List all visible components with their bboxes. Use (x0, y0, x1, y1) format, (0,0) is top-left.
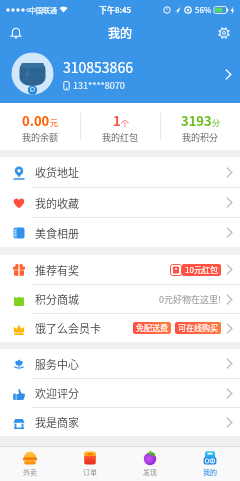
staticText: 免配送费 (136, 322, 168, 334)
staticText: 可在线购买 (178, 322, 218, 334)
staticText: 饿了么会员卡 (35, 320, 101, 336)
button[interactable]: 我的 (180, 447, 240, 481)
staticText: 310853866 (63, 57, 133, 77)
button[interactable]: 310853866 (0, 45, 240, 103)
staticText: 推荐有奖 (35, 262, 79, 278)
staticText: 中国联通 (29, 5, 57, 15)
staticText: 我的 (203, 467, 217, 477)
button[interactable]: 欢迎评分 (0, 379, 240, 407)
staticText: 发现 (143, 467, 157, 477)
staticText: 欢迎评分 (35, 385, 79, 401)
staticText: 外卖 (23, 467, 37, 477)
staticText: 服务中心 (35, 356, 79, 372)
button[interactable]: 1 (81, 103, 160, 150)
staticText: 分 (212, 117, 220, 129)
staticText: 我的积分 (182, 131, 219, 144)
button[interactable]: 我的收藏 (0, 188, 240, 217)
staticText: 下午8:45 (99, 4, 132, 16)
button[interactable]: 0.00 (0, 103, 80, 150)
button[interactable]: 订单 (60, 447, 120, 481)
staticText: 收货地址 (35, 164, 79, 180)
staticText: 3193 (181, 111, 212, 130)
staticText: 0元好物在这里! (159, 293, 221, 306)
staticText: 元 (50, 117, 58, 129)
button[interactable]: 美食相册 (0, 218, 240, 247)
button[interactable]: 外卖 (0, 447, 60, 481)
staticText: 我的收藏 (35, 195, 79, 211)
staticText: 0.00 (22, 111, 50, 130)
staticText: 订单 (83, 467, 97, 477)
button[interactable] (7, 24, 25, 42)
staticText: 积分商城 (35, 291, 79, 307)
button[interactable]: 服务中心 (0, 349, 240, 378)
staticText: 美食相册 (35, 225, 79, 241)
staticText: 个 (121, 117, 129, 129)
button[interactable]: 推荐有奖 (0, 255, 240, 284)
button[interactable]: 饿了么会员卡 (0, 314, 240, 342)
staticText: 我的余额 (22, 131, 59, 144)
button[interactable]: 发现 (120, 447, 180, 481)
staticText: 56% (195, 4, 212, 16)
staticText: 我是商家 (35, 414, 79, 430)
staticText: 我的红包 (102, 131, 139, 144)
staticText: 131****8070 (73, 79, 125, 92)
staticText: 1 (113, 111, 121, 130)
staticText: 我的 (108, 24, 133, 41)
button[interactable]: 我是商家 (0, 408, 240, 436)
button[interactable] (215, 24, 233, 42)
staticText: 10元红包 (185, 264, 218, 276)
button[interactable]: 积分商城 (0, 285, 240, 313)
button[interactable]: 收货地址 (0, 157, 240, 187)
button[interactable]: 3193 (161, 103, 240, 150)
